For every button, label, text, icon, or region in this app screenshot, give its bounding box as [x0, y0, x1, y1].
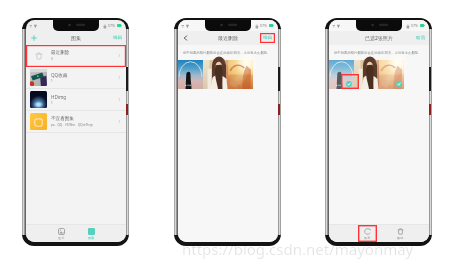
staticText: 编辑 [263, 35, 272, 41]
staticText: 删除 [397, 236, 404, 240]
button[interactable]: Back [178, 31, 193, 45]
staticText: 您不想要的照片删除后会在此保存30天，之后将永久删除。 [183, 50, 271, 55]
staticText: 恢复 [364, 236, 371, 240]
button[interactable]: HDimg [26, 89, 126, 111]
staticText: 编辑 [113, 35, 122, 41]
button[interactable] [178, 60, 203, 89]
staticText: HDimg [51, 94, 67, 100]
button[interactable] [228, 60, 253, 89]
button[interactable]: 取消 [412, 32, 429, 44]
button[interactable] [203, 60, 228, 89]
button[interactable]: 编辑 [109, 32, 126, 44]
button[interactable]: 编辑 [260, 33, 275, 43]
button[interactable]: Add album [26, 31, 42, 45]
staticText: 1 [51, 101, 53, 105]
button[interactable]: 图集 [85, 227, 98, 241]
staticText: 不宜看图集 [51, 116, 74, 122]
button[interactable]: 最近删除 [26, 45, 126, 67]
staticText: 1 [51, 79, 53, 83]
button[interactable]: QQ收藏 [26, 67, 126, 89]
staticText: 57% [411, 23, 419, 28]
staticText: 图集 [71, 35, 81, 41]
button[interactable] [354, 60, 379, 89]
button[interactable]: 恢复 [361, 227, 374, 241]
staticText: 3 [51, 57, 53, 61]
button[interactable]: 照片 [55, 227, 68, 241]
staticText: 最近删除 [218, 35, 238, 41]
button[interactable] [379, 60, 404, 89]
staticText: 您不想要的照片删除后会在此保存30天，之后将永久删除。 [334, 50, 422, 55]
staticText: https://blog.csdn.net/mayonmay [182, 239, 414, 259]
button[interactable]: 删除 [394, 227, 407, 241]
staticText: 已选2张照片 [365, 35, 393, 42]
staticText: QQ收藏 [51, 72, 68, 78]
staticText: pa、QQ、HDfilm、QQ存Pic图 [51, 123, 93, 127]
staticText: 57% [260, 23, 268, 28]
button[interactable]: 不宜看图集 [26, 111, 126, 133]
button[interactable] [329, 60, 354, 89]
staticText: 照片 [58, 236, 65, 240]
staticText: 取消 [416, 35, 425, 41]
staticText: 图集 [88, 236, 95, 240]
staticText: 最近删除 [51, 50, 70, 56]
staticText: 57% [108, 23, 116, 28]
